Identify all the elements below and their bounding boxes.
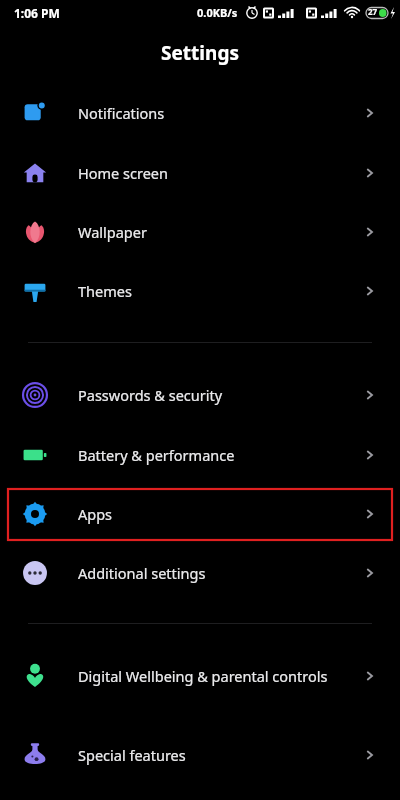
staticText: Passwords & security <box>78 385 223 405</box>
button[interactable]: Additional settings <box>0 545 400 601</box>
staticText: 0.0KB/s <box>197 5 238 20</box>
button[interactable]: Passwords & security <box>0 367 400 423</box>
button[interactable]: Battery & performance <box>0 427 400 483</box>
staticText: Digital Wellbeing & parental controls <box>78 666 328 686</box>
button[interactable]: Notifications <box>0 85 400 141</box>
staticText: 27 <box>368 6 378 17</box>
button[interactable]: Apps <box>0 486 400 542</box>
staticText: Apps <box>78 504 113 524</box>
staticText: 1:06 PM <box>14 5 60 21</box>
staticText: Themes <box>78 281 132 301</box>
button[interactable]: Wallpaper <box>0 204 400 260</box>
button[interactable]: Special features <box>0 727 400 783</box>
staticText: Battery & performance <box>78 445 235 465</box>
staticText: Settings <box>161 40 239 66</box>
button[interactable]: Home screen <box>0 145 400 201</box>
button[interactable]: Digital Wellbeing & parental controls <box>0 648 400 704</box>
staticText: Special features <box>78 745 186 765</box>
button[interactable]: Themes <box>0 263 400 319</box>
staticText: Notifications <box>78 103 165 123</box>
staticText: Home screen <box>78 163 168 183</box>
staticText: Wallpaper <box>78 222 147 242</box>
staticText: Additional settings <box>78 563 206 583</box>
